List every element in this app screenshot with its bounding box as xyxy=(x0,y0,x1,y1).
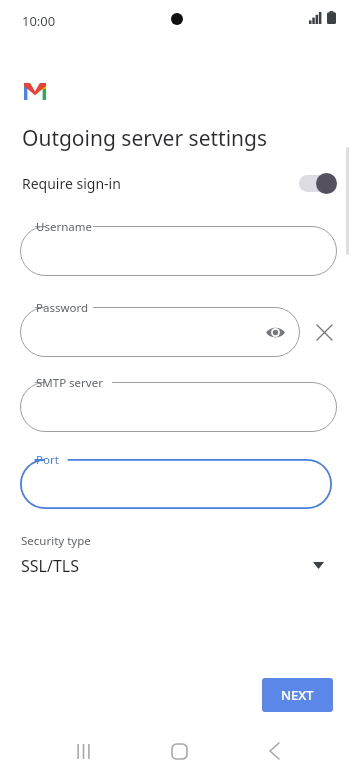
button[interactable]: Back xyxy=(250,728,298,774)
staticText: Outgoing server settings xyxy=(22,124,268,153)
staticText: NEXT xyxy=(281,686,314,704)
staticText: Require sign-in xyxy=(22,174,121,193)
button[interactable]: Show password xyxy=(262,319,288,345)
button[interactable]: Require sign-in xyxy=(0,166,357,200)
button[interactable]: Home xyxy=(155,728,203,774)
button[interactable]: Port xyxy=(20,459,332,509)
button[interactable]: Username xyxy=(20,226,337,276)
staticText: Port xyxy=(36,452,59,468)
button[interactable]: Clear password xyxy=(310,318,338,346)
staticText: SSL/TLS xyxy=(21,555,79,577)
button[interactable]: Security type xyxy=(0,528,357,588)
button[interactable]: NEXT xyxy=(262,678,333,712)
button[interactable]: SMTP server xyxy=(20,382,337,432)
staticText: Password xyxy=(36,300,89,316)
staticText: Username xyxy=(36,219,92,235)
staticText: Security type xyxy=(21,533,91,549)
staticText: 10:00 xyxy=(22,12,56,30)
button[interactable]: Recent apps xyxy=(59,728,107,774)
button[interactable]: Password xyxy=(20,307,300,357)
staticText: SMTP server xyxy=(36,375,103,391)
